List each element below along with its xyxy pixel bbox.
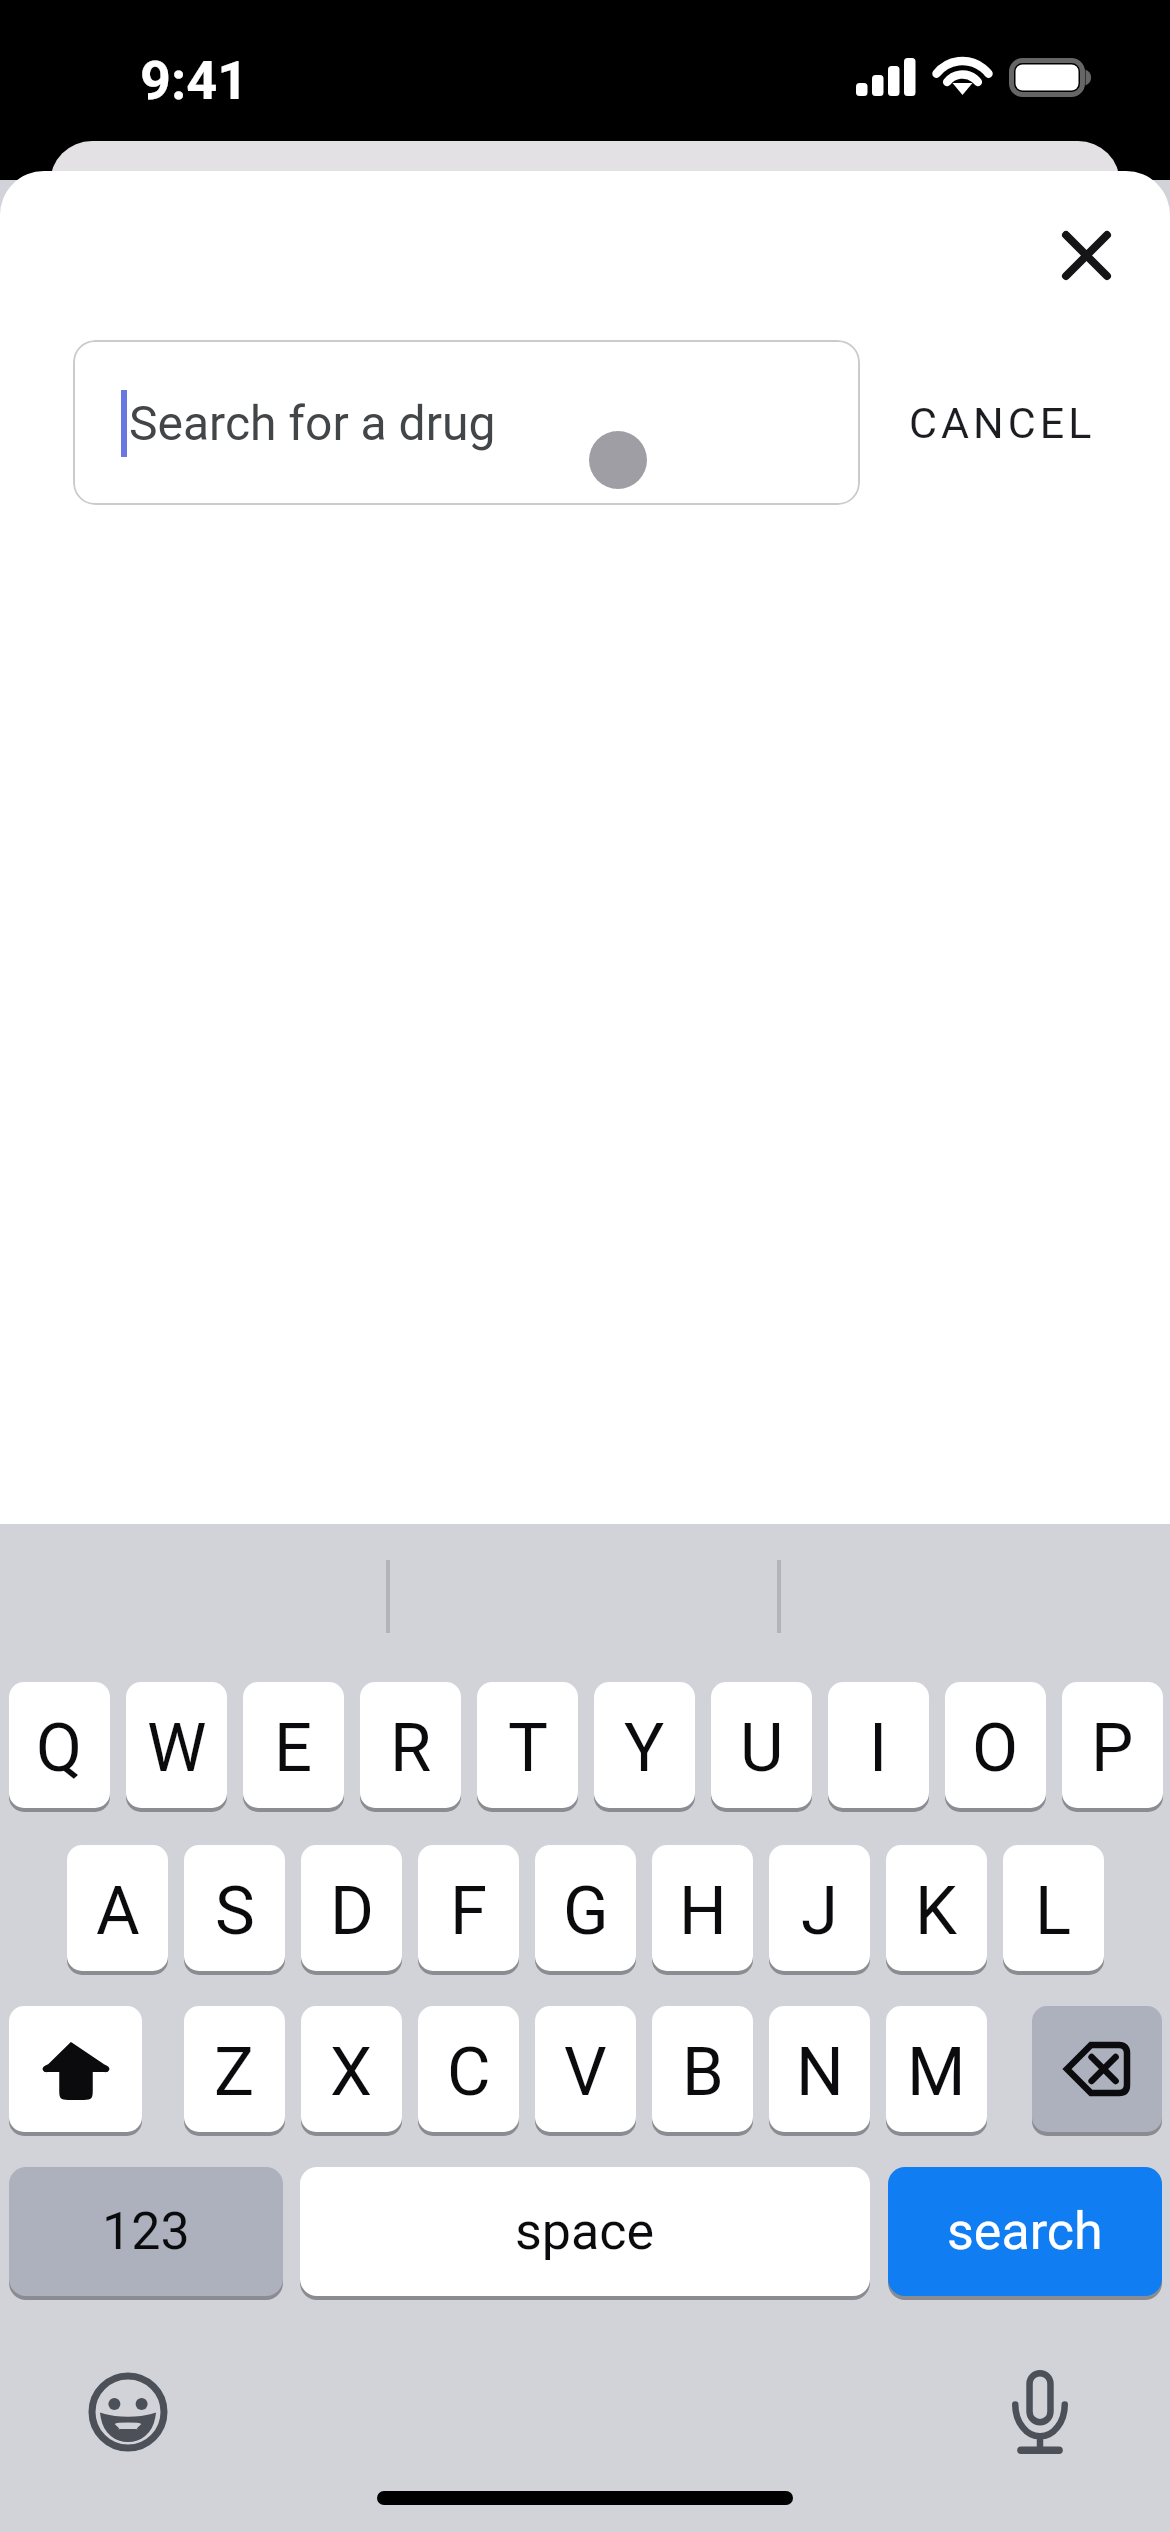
button[interactable]: 123 [9,2167,283,2296]
button[interactable]: W [126,1682,227,1808]
button[interactable]: O [945,1682,1046,1808]
button[interactable]: A [67,1845,168,1971]
button[interactable]: P [1062,1682,1163,1808]
button[interactable]: I [828,1682,929,1808]
button[interactable]: Search for a drug [73,340,860,505]
staticText: 9:41 [140,49,249,112]
staticText: X [330,2033,373,2112]
staticText: K [915,1872,958,1951]
button[interactable]: S [184,1845,285,1971]
button[interactable]: T [477,1682,578,1808]
staticText: space [515,2201,655,2262]
staticText: D [330,1872,374,1951]
staticText: W [147,1709,207,1788]
staticText: T [508,1709,548,1788]
button[interactable]: D [301,1845,402,1971]
staticText: I [869,1709,888,1788]
button[interactable]: Voice input [980,2352,1100,2472]
button[interactable]: F [418,1845,519,1971]
staticText: R [390,1709,432,1788]
staticText: 123 [102,2201,190,2262]
staticText: CANCEL [909,398,1096,448]
button[interactable]: C [418,2006,519,2132]
staticText: L [1035,1872,1072,1951]
staticText: C [447,2033,491,2112]
staticText: Q [36,1709,83,1788]
button[interactable]: space [300,2167,870,2296]
button[interactable]: N [769,2006,870,2132]
button[interactable]: M [886,2006,987,2132]
button[interactable]: H [652,1845,753,1971]
button[interactable]: E [243,1682,344,1808]
button[interactable]: search [888,2167,1162,2296]
staticText: H [679,1872,727,1951]
staticText: U [740,1709,784,1788]
staticText: O [972,1709,1019,1788]
button[interactable]: Backspace [1032,2006,1162,2132]
staticText: S [215,1872,255,1951]
staticText: Z [214,2033,255,2112]
button[interactable]: X [301,2006,402,2132]
button[interactable]: U [711,1682,812,1808]
staticText: Search for a drug [129,395,496,451]
button[interactable]: CANCEL [890,340,1115,505]
button[interactable]: Z [184,2006,285,2132]
button[interactable]: Q [9,1682,110,1808]
staticText: P [1091,1709,1134,1788]
staticText: B [682,2033,724,2112]
button[interactable]: Close [1026,195,1146,315]
staticText: A [96,1872,140,1951]
staticText: search [947,2201,1103,2262]
staticText: M [907,2033,966,2112]
button[interactable]: Shift [9,2006,142,2132]
button[interactable]: B [652,2006,753,2132]
staticText: E [274,1709,313,1788]
button[interactable]: Y [594,1682,695,1808]
staticText: J [801,1872,838,1951]
button[interactable]: Emoji [68,2352,188,2472]
staticText: N [796,2033,844,2112]
staticText: F [450,1872,488,1951]
button[interactable]: J [769,1845,870,1971]
button[interactable]: K [886,1845,987,1971]
staticText: V [564,2033,607,2112]
staticText: Y [624,1709,665,1788]
button[interactable]: L [1003,1845,1104,1971]
button[interactable]: G [535,1845,636,1971]
button[interactable]: R [360,1682,461,1808]
button[interactable]: V [535,2006,636,2132]
staticText: G [563,1872,609,1951]
